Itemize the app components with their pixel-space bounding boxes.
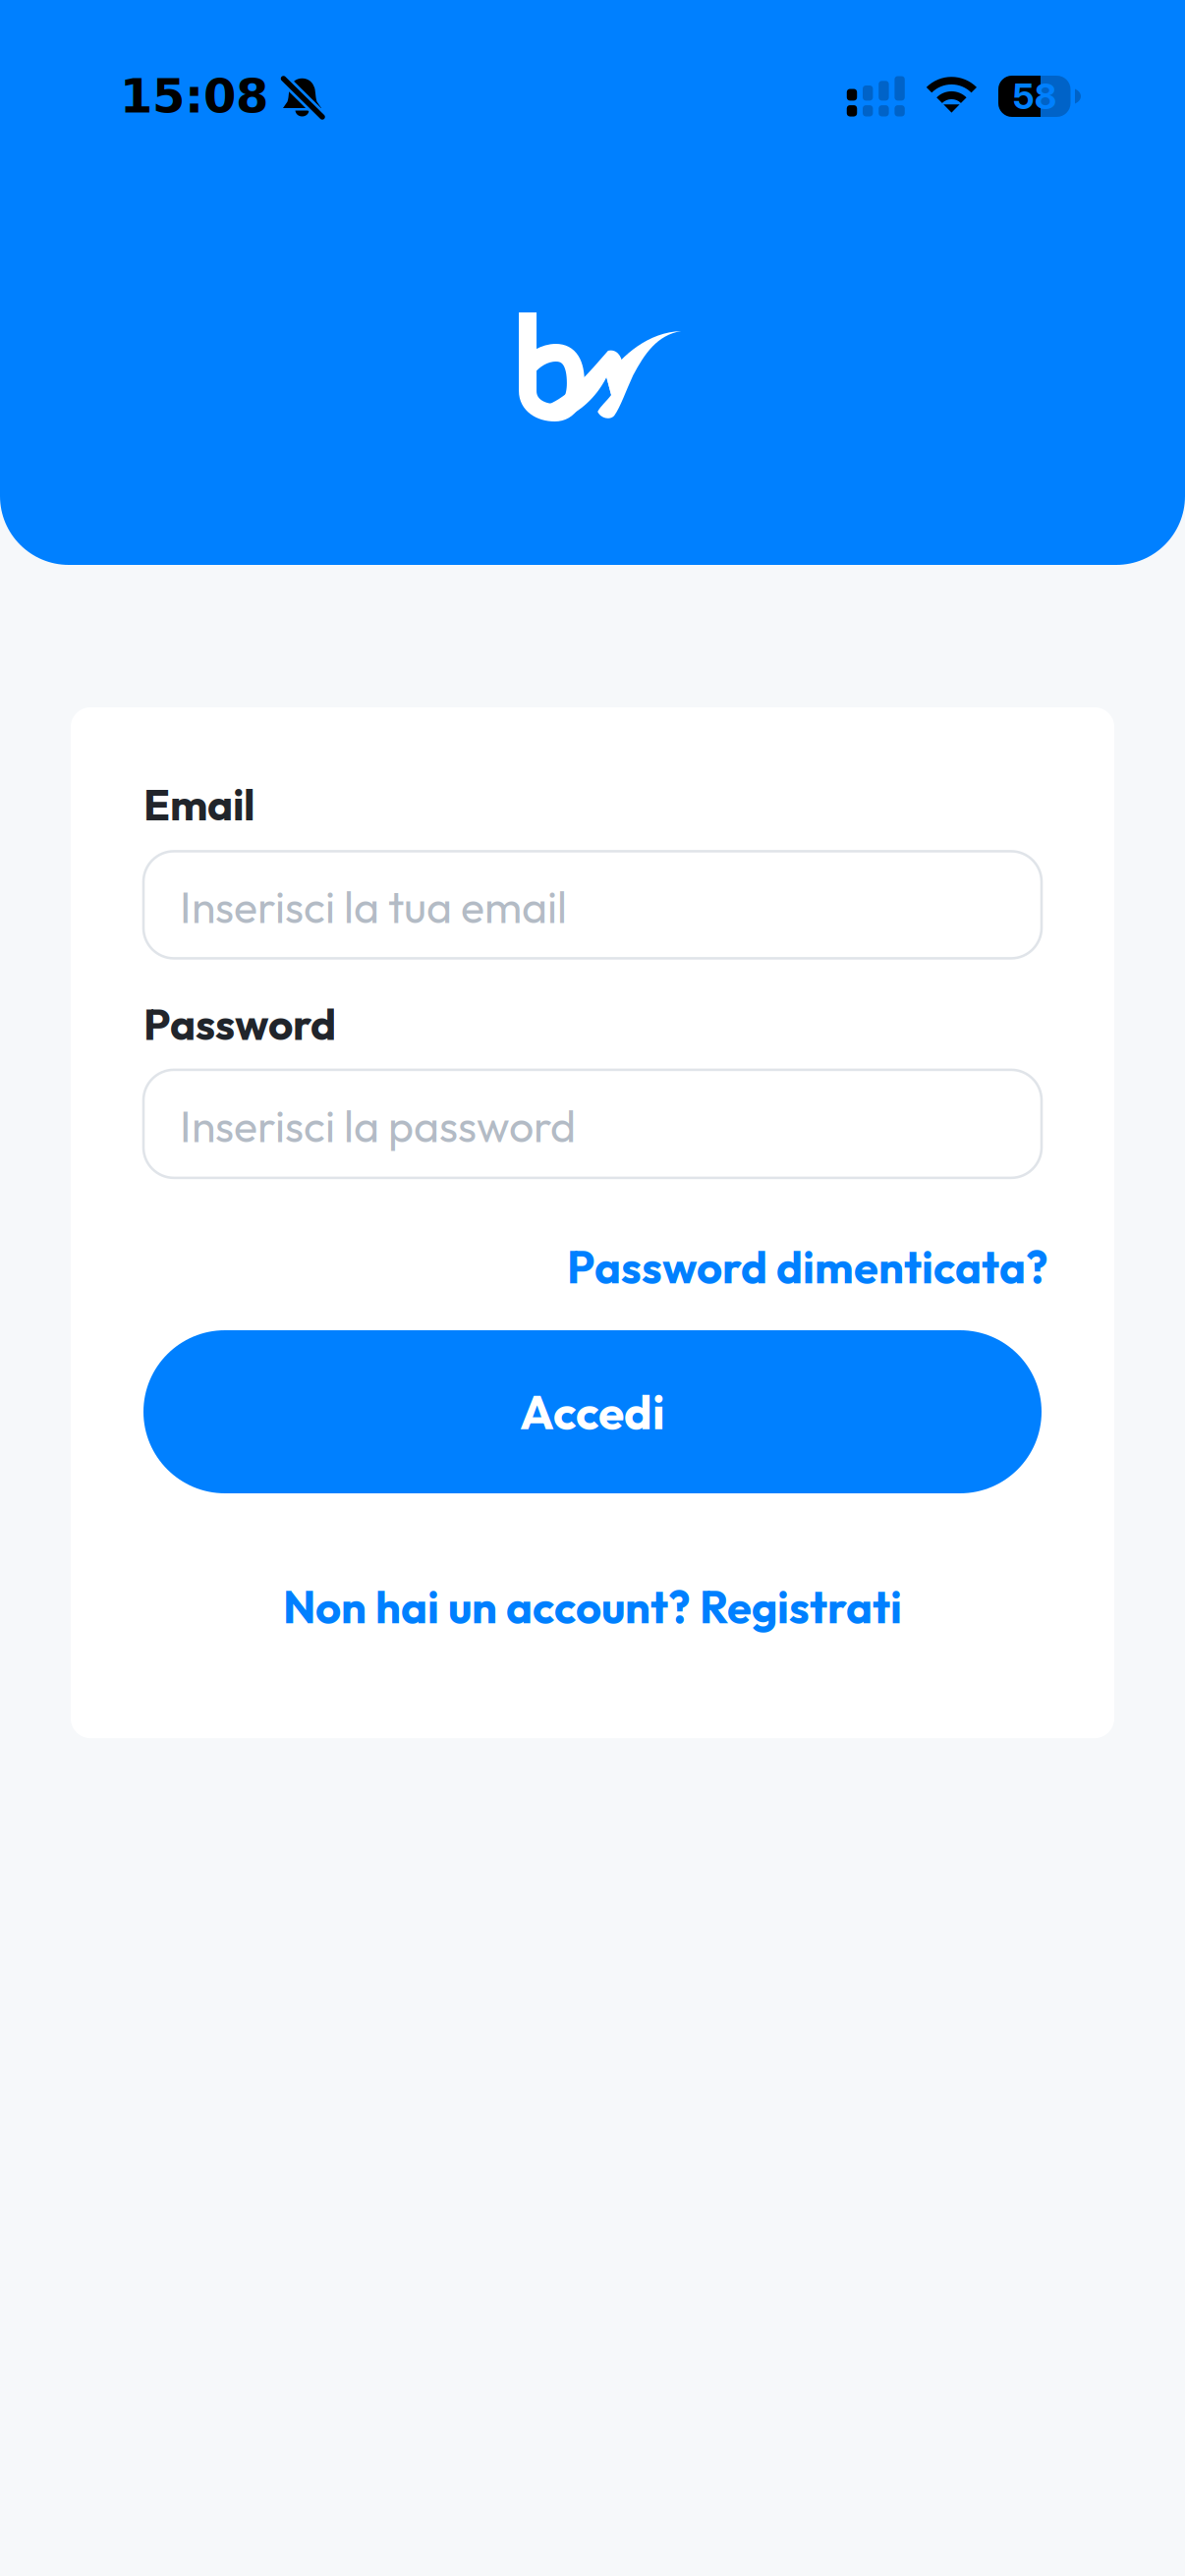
staticText: 15:08 xyxy=(120,69,268,124)
staticText: 58 xyxy=(1013,75,1056,118)
staticText: Email xyxy=(143,777,254,832)
staticText: Password dimenticata? xyxy=(567,1239,1048,1295)
staticText: Accedi xyxy=(520,1382,665,1442)
button[interactable]: Password dimenticata? xyxy=(143,1239,1042,1295)
staticText: Non hai un account? Registrati xyxy=(283,1579,902,1635)
staticText: Inserisci la password xyxy=(180,1098,576,1153)
button[interactable]: Non hai un account? Registrati xyxy=(143,1579,1042,1635)
staticText: Inserisci la tua email xyxy=(180,879,567,934)
staticText: Password xyxy=(143,997,336,1051)
button[interactable]: Accedi xyxy=(143,1330,1042,1493)
